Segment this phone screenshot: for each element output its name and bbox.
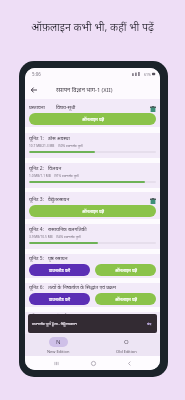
staticText: पृष्ठ रसायन [48, 255, 68, 262]
staticText: तत्वों के निष्कर्षण के सिद्धांत एवं प्रक… [48, 284, 116, 291]
staticText: रासायनिक बलगतिकी [48, 226, 87, 233]
staticText: p-ब्लॉक के तत्व [48, 313, 77, 320]
staticText: New Edition [47, 349, 70, 354]
staticText: यूनिट 7: [29, 313, 44, 320]
button[interactable]: ऑनलाइन पढ़ें [29, 113, 156, 125]
staticText: ऑनलाइन पढ़ें [82, 116, 104, 122]
button[interactable]: यूनिट 6: [25, 283, 160, 307]
staticText: 10.7 MB/21.3 MB [29, 144, 55, 148]
staticText: विषय-सूची [56, 104, 76, 111]
staticText: 1.0 MB/1.1 MB [29, 174, 51, 178]
button[interactable]: N [25, 334, 92, 356]
staticText: डाउनलोड करें [49, 267, 71, 273]
button[interactable]: Recents [50, 357, 62, 369]
button[interactable]: यूनिट 5: [25, 254, 160, 278]
staticText: यूनिट 5: [29, 255, 44, 262]
button[interactable]: प्रस्तावना [25, 99, 160, 127]
staticText: 5:06 [32, 71, 41, 77]
staticText: यूनिट 4: [29, 226, 44, 233]
button[interactable]: Home [87, 357, 99, 369]
button[interactable]: बंद [147, 321, 152, 326]
staticText: (50% डाउनलोड पूर्ण) [58, 144, 83, 148]
button[interactable]: ऑनलाइन पढ़ें [95, 320, 156, 332]
staticText: ऑनलाइन पढ़ें [115, 267, 137, 273]
staticText: ऑनलाइन पढ़ें [82, 208, 104, 214]
staticText: 61% [144, 72, 151, 77]
staticText: 3.9 MB/10.5 MB [29, 235, 53, 239]
button[interactable]: डाउनलोड करें [29, 293, 90, 305]
button[interactable]: Delete download [150, 106, 156, 112]
button[interactable]: यूनिट 4: [25, 224, 160, 249]
button[interactable]: Back [123, 357, 135, 369]
button[interactable]: यूनिट 3: [25, 192, 160, 219]
button[interactable]: Delete download [150, 198, 156, 204]
staticText: रसायन विज्ञान भाग-1 (XII) [56, 86, 113, 94]
staticText: यूनिट 2: [29, 165, 44, 172]
staticText: विलयन [48, 165, 62, 172]
staticText: डाउनलोड करें [49, 296, 71, 302]
button[interactable]: यूनिट 7: [25, 312, 160, 334]
button[interactable]: यूनिट 1: [25, 133, 160, 158]
staticText: यूनिट 6: [29, 284, 44, 291]
button[interactable]: ऑनलाइन पढ़ें [95, 293, 156, 305]
staticText: डाउनलोड करें [49, 323, 71, 329]
button[interactable]: ऑनलाइन पढ़ें [29, 205, 156, 217]
staticText: Old Edition [116, 349, 137, 354]
staticText: (54% डाउनलोड पूर्ण) [56, 235, 81, 239]
button[interactable]: डाउनलोड करें [29, 320, 90, 332]
staticText: बंद [147, 321, 152, 326]
button[interactable]: Back [27, 83, 40, 96]
button[interactable]: डाउनलोड करें [29, 264, 90, 276]
button[interactable]: ऑनलाइन पढ़ें [95, 264, 156, 276]
staticText: डाउनलोड पूर्ण हुआ - वैद्युतरसायन [32, 321, 77, 326]
staticText: यूनिट 3: [29, 196, 44, 203]
staticText: N [56, 338, 61, 346]
staticText: यूनिट 1: [29, 135, 44, 142]
staticText: वैद्युतरसायन [48, 196, 70, 203]
staticText: ठोस अवस्था [48, 135, 70, 142]
button[interactable]: O [92, 334, 160, 356]
staticText: ऑफ़लाइन कभी भी, कहीं भी पढ़ें [18, 20, 167, 34]
button[interactable]: यूनिट 2: [25, 163, 160, 188]
staticText: ऑनलाइन पढ़ें [115, 296, 137, 302]
staticText: O [124, 338, 129, 346]
staticText: प्रस्तावना [29, 104, 45, 111]
staticText: (91% डाउनलोड पूर्ण) [54, 174, 79, 178]
